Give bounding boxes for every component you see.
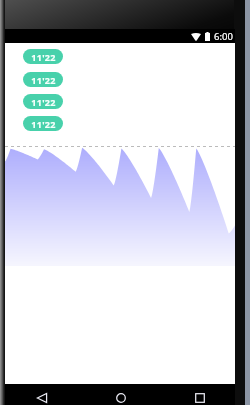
button[interactable]: 11'22	[23, 116, 63, 131]
staticText: 11'22	[31, 51, 56, 63]
button[interactable]: Back	[20, 384, 63, 405]
staticText: 11'22	[31, 74, 56, 86]
staticText: 6:00	[214, 30, 233, 43]
staticText: 11'22	[31, 118, 56, 130]
button[interactable]: 11'22	[23, 72, 63, 87]
button[interactable]: 11'22	[23, 49, 63, 64]
button[interactable]: 11'22	[23, 94, 63, 109]
button[interactable]: Home	[99, 384, 142, 405]
staticText: 11'22	[31, 96, 56, 108]
button[interactable]: Recent apps	[178, 384, 221, 405]
